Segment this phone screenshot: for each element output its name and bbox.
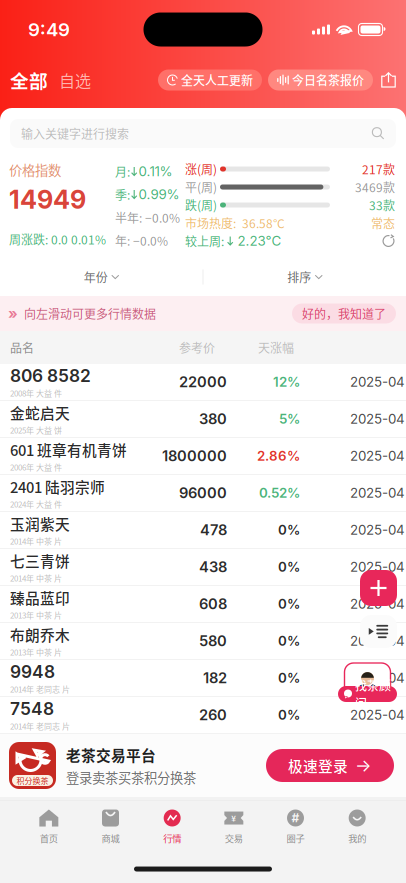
- staticText: 首页: [40, 831, 58, 845]
- button[interactable]: 首页: [18, 800, 80, 847]
- staticText: 182: [203, 669, 227, 687]
- staticText: 全天人工更新: [181, 71, 253, 89]
- staticText: 2014年 中茶 片: [10, 572, 62, 584]
- staticText: 交易: [225, 831, 243, 845]
- staticText: 常态: [371, 214, 395, 232]
- button[interactable]: 排序: [203, 258, 406, 296]
- staticText: 9948: [10, 661, 55, 682]
- staticText: 周涨跌: 0.0 0.01%: [9, 231, 106, 248]
- staticText: #: [291, 811, 299, 825]
- staticText: 2014年 中茶 片: [10, 535, 62, 547]
- staticText: 0%: [278, 559, 300, 575]
- staticText: 较上周:: [185, 232, 227, 250]
- staticText: 2025-04: [350, 485, 405, 501]
- button[interactable]: 806 8582: [0, 364, 406, 401]
- staticText: 好的，我知道了: [302, 305, 386, 322]
- staticText: 涨(周): [185, 160, 217, 178]
- button[interactable]: 9948: [0, 660, 406, 697]
- staticText: 天涨幅: [258, 339, 294, 356]
- staticText: 市场热度: 36.58°C: [185, 214, 285, 232]
- staticText: 260: [199, 706, 227, 724]
- button[interactable]: Add: [360, 570, 397, 606]
- staticText: 2025-04: [350, 522, 405, 538]
- button[interactable]: 年份: [0, 258, 202, 296]
- staticText: 2025-04: [350, 559, 405, 575]
- staticText: 向左滑动可更多行情数据: [24, 305, 156, 322]
- button[interactable]: 今日名茶报价: [262, 69, 373, 90]
- staticText: →: [355, 755, 372, 776]
- staticText: 217款: [362, 160, 395, 178]
- staticText: 七三青饼: [10, 550, 70, 571]
- button[interactable]: 商城: [80, 800, 141, 847]
- staticText: 玉润紫天: [10, 513, 70, 534]
- staticText: 2025-04: [350, 596, 405, 612]
- button[interactable]: 7548: [0, 697, 406, 734]
- staticText: 438: [199, 558, 227, 576]
- staticText: 找茶顾问: [355, 677, 391, 711]
- staticText: 2.86%: [257, 448, 300, 464]
- button[interactable]: 布朗乔木: [0, 623, 406, 660]
- button[interactable]: 金蛇启天: [0, 401, 406, 438]
- staticText: 2401 陆羽宗师: [10, 476, 105, 497]
- staticText: 自选: [59, 68, 91, 92]
- staticText: 0%: [278, 670, 300, 686]
- button[interactable]: Refresh: [382, 234, 395, 247]
- button[interactable]: Rankings: [360, 615, 397, 648]
- staticText: 平(周): [185, 178, 217, 196]
- staticText: 臻品蓝印: [10, 587, 70, 608]
- button[interactable]: 臻品蓝印: [0, 586, 406, 623]
- staticText: 580: [199, 632, 227, 650]
- staticText: 3469款: [355, 178, 395, 196]
- staticText: 0.52%: [259, 485, 300, 501]
- staticText: 12%: [273, 374, 300, 390]
- staticText: 2025-04: [350, 707, 405, 723]
- staticText: 年: −0.0%: [115, 232, 168, 249]
- staticText: 2025-04: [350, 448, 405, 464]
- staticText: 0.99%: [138, 186, 179, 202]
- button[interactable]: 全部: [10, 66, 48, 93]
- button[interactable]: 自选: [48, 68, 91, 92]
- staticText: 14949: [9, 184, 86, 215]
- staticText: 2.23°C: [233, 233, 281, 249]
- button[interactable]: 行情: [141, 800, 203, 847]
- staticText: 0%: [278, 522, 300, 538]
- staticText: 行情: [163, 831, 181, 845]
- staticText: 608: [199, 595, 227, 613]
- staticText: 1800000: [162, 447, 227, 465]
- staticText: 排序: [287, 268, 311, 286]
- staticText: 2025-04: [350, 633, 405, 649]
- button[interactable]: 我的: [326, 800, 388, 847]
- staticText: 圈子: [286, 831, 304, 845]
- button[interactable]: 积分换茶: [0, 734, 406, 797]
- staticText: 品名: [10, 339, 34, 356]
- staticText: 2024年 大益 件: [10, 498, 62, 510]
- button[interactable]: ¥: [203, 800, 265, 847]
- staticText: 今日名茶报价: [292, 71, 364, 89]
- button[interactable]: #: [265, 800, 326, 847]
- button[interactable]: 全天人工更新: [158, 69, 262, 90]
- button[interactable]: 601 班章有机青饼: [0, 438, 406, 475]
- staticText: 参考价: [179, 339, 215, 356]
- staticText: 输入关键字进行搜索: [21, 125, 129, 142]
- staticText: 380: [199, 410, 227, 428]
- staticText: 季:: [115, 186, 130, 203]
- staticText: 22000: [179, 373, 227, 391]
- button[interactable]: 玉润紫天: [0, 512, 406, 549]
- staticText: 半年: −0.0%: [115, 209, 180, 226]
- button[interactable]: 2401 陆羽宗师: [0, 475, 406, 512]
- staticText: 2025年 大益 饼: [10, 424, 62, 436]
- staticText: 96000: [179, 484, 227, 502]
- staticText: 跌(周): [185, 196, 217, 214]
- staticText: 金蛇启天: [10, 402, 70, 423]
- button[interactable]: 七三青饼: [0, 549, 406, 586]
- staticText: 33款: [369, 196, 395, 214]
- staticText: 全部: [10, 66, 48, 93]
- button[interactable]: 好的，我知道了: [292, 303, 406, 323]
- staticText: 9:49: [28, 18, 70, 41]
- staticText: 601 班章有机青饼: [10, 439, 127, 460]
- button[interactable]: 找茶顾问: [335, 657, 397, 702]
- staticText: 7548: [10, 698, 54, 719]
- button[interactable]: Share: [373, 72, 396, 88]
- staticText: 2014年 老同志 片: [10, 683, 70, 695]
- staticText: 极速登录: [288, 755, 348, 776]
